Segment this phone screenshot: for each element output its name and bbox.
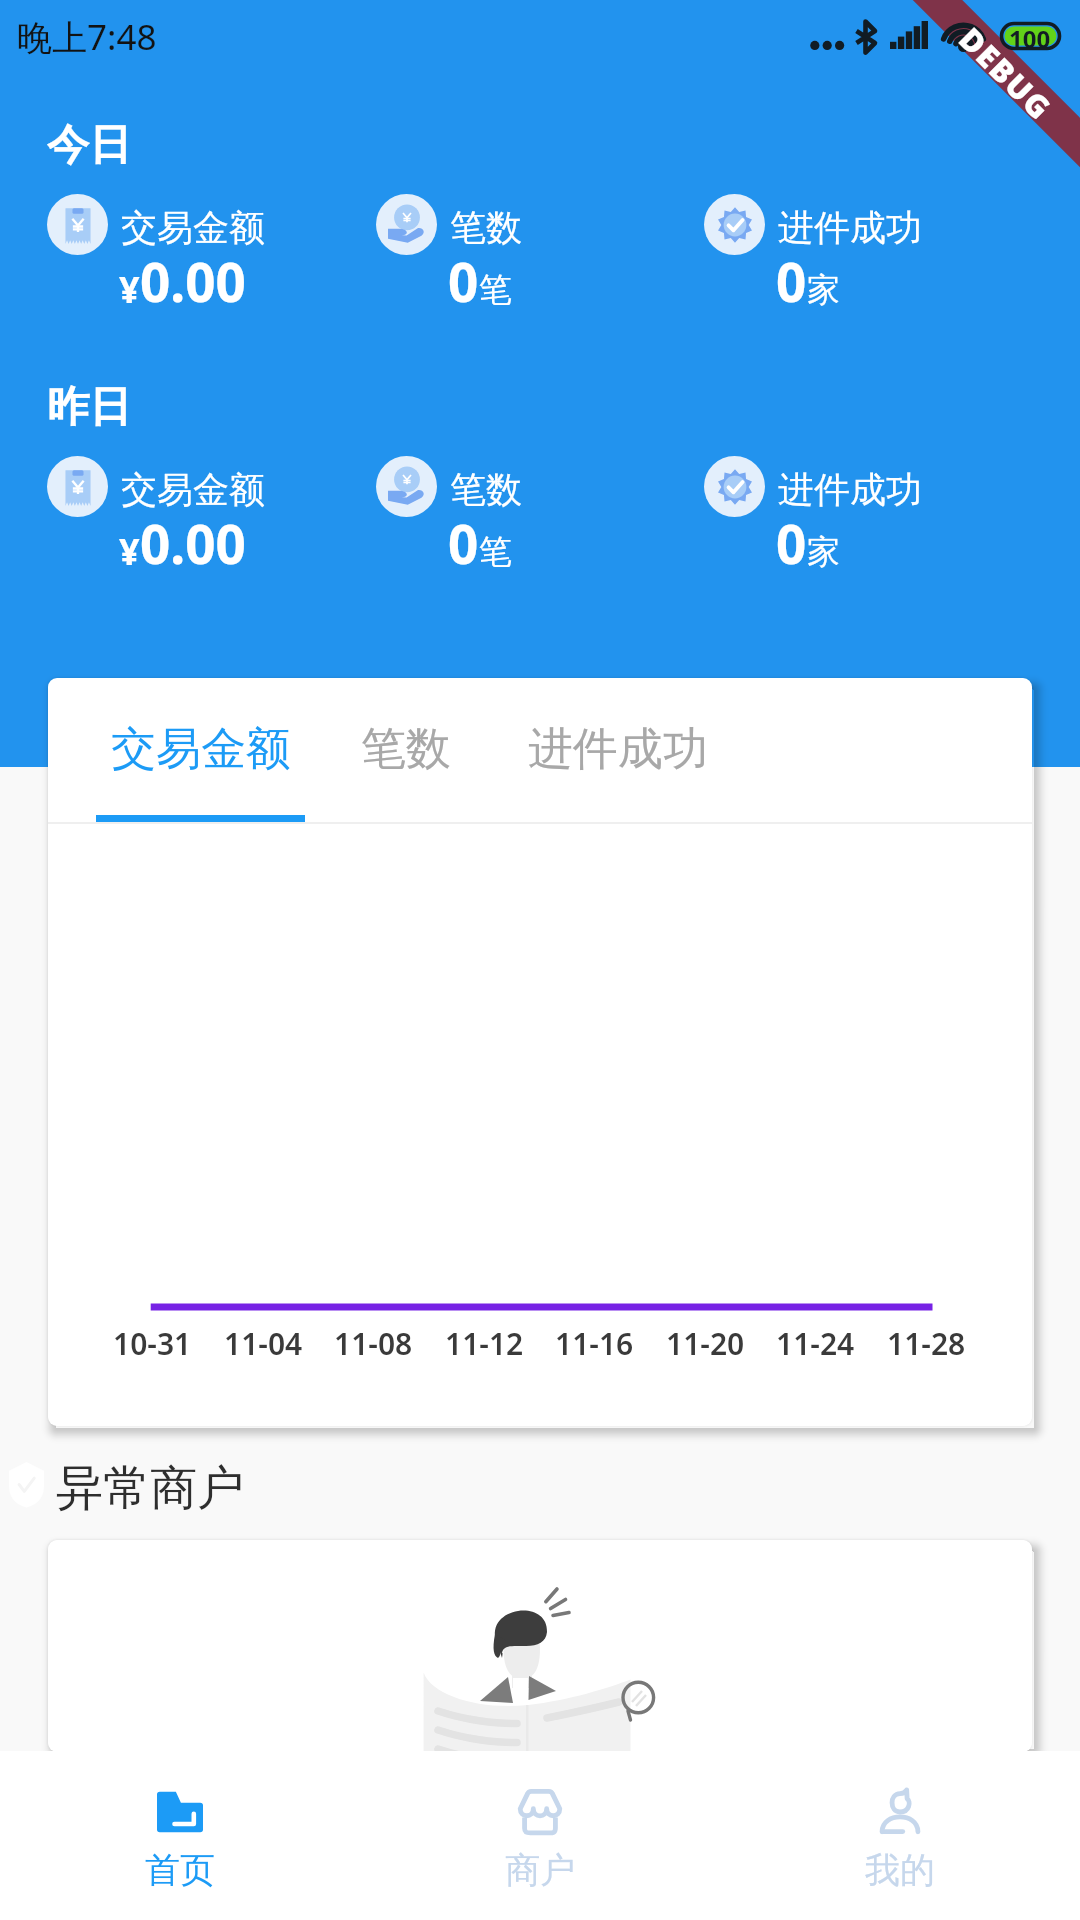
button[interactable]: 笔数 bbox=[348, 678, 463, 822]
staticText: 0.00 bbox=[140, 507, 246, 579]
staticText: 交易金额 bbox=[111, 721, 291, 778]
staticText: 0 bbox=[448, 507, 479, 579]
staticText: 异常商户 bbox=[56, 1459, 244, 1518]
button[interactable]: 笔数 bbox=[376, 194, 696, 324]
button[interactable]: 首页 bbox=[0, 1751, 360, 1920]
button[interactable]: 进件成功 bbox=[704, 456, 1024, 586]
staticText: 0 bbox=[776, 507, 807, 579]
staticText: 11-28 bbox=[887, 1323, 966, 1364]
staticText: 商户 bbox=[505, 1848, 575, 1892]
staticText: 0 bbox=[776, 245, 807, 317]
staticText: 首页 bbox=[145, 1848, 215, 1892]
staticText: 10-31 bbox=[113, 1323, 192, 1364]
staticText: 笔 bbox=[479, 269, 512, 311]
staticText: 0 bbox=[448, 245, 479, 317]
staticText: 晚上7:48 bbox=[17, 13, 157, 61]
staticText: 11-20 bbox=[666, 1323, 745, 1364]
button[interactable]: 交易金额 bbox=[96, 678, 305, 822]
staticText: 11-04 bbox=[224, 1323, 303, 1364]
button[interactable]: 交易金额 bbox=[47, 194, 367, 324]
staticText: 笔数 bbox=[361, 721, 451, 778]
staticText: 笔 bbox=[479, 531, 512, 573]
staticText: ¥ bbox=[119, 265, 140, 314]
staticText: 家 bbox=[807, 269, 840, 311]
staticText: 笔数 bbox=[450, 205, 522, 250]
staticText: 我的 bbox=[865, 1848, 935, 1892]
staticText: 笔数 bbox=[450, 467, 522, 512]
staticText: DEBUG bbox=[955, 18, 1061, 124]
staticText: 进件成功 bbox=[778, 467, 922, 512]
button[interactable]: 交易金额 bbox=[47, 456, 367, 586]
staticText: 进件成功 bbox=[528, 721, 708, 778]
staticText: 进件成功 bbox=[778, 205, 922, 250]
staticText: 交易金额 bbox=[121, 467, 265, 512]
button[interactable]: 我的 bbox=[720, 1751, 1080, 1920]
button[interactable]: 笔数 bbox=[376, 456, 696, 586]
staticText: 0.00 bbox=[140, 245, 246, 317]
staticText: 100 bbox=[1009, 22, 1051, 55]
staticText: 交易金额 bbox=[121, 205, 265, 250]
staticText: ¥ bbox=[119, 527, 140, 576]
staticText: 11-24 bbox=[776, 1323, 855, 1364]
staticText: 今日 bbox=[47, 119, 131, 172]
staticText: 11-08 bbox=[334, 1323, 413, 1364]
button[interactable]: 商户 bbox=[360, 1751, 720, 1920]
staticText: 昨日 bbox=[47, 381, 131, 434]
button[interactable]: 进件成功 bbox=[704, 194, 1024, 324]
staticText: 11-16 bbox=[555, 1323, 634, 1364]
staticText: 11-12 bbox=[445, 1323, 524, 1364]
button[interactable]: 进件成功 bbox=[513, 678, 722, 822]
staticText: 家 bbox=[807, 531, 840, 573]
